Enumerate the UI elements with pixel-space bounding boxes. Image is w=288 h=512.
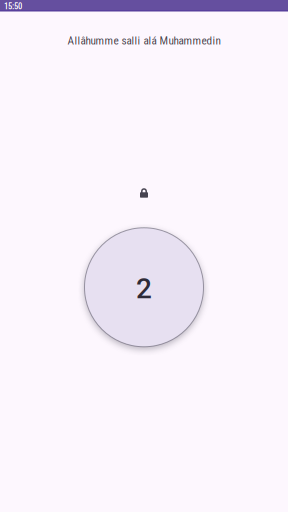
staticText: Allâhumme salli alá Muhammedin [67, 34, 220, 47]
button[interactable]: 2 [85, 228, 203, 346]
staticText: 15:50 [4, 1, 22, 11]
staticText: 2 [136, 272, 152, 305]
button[interactable]: Lock counter [139, 187, 148, 198]
